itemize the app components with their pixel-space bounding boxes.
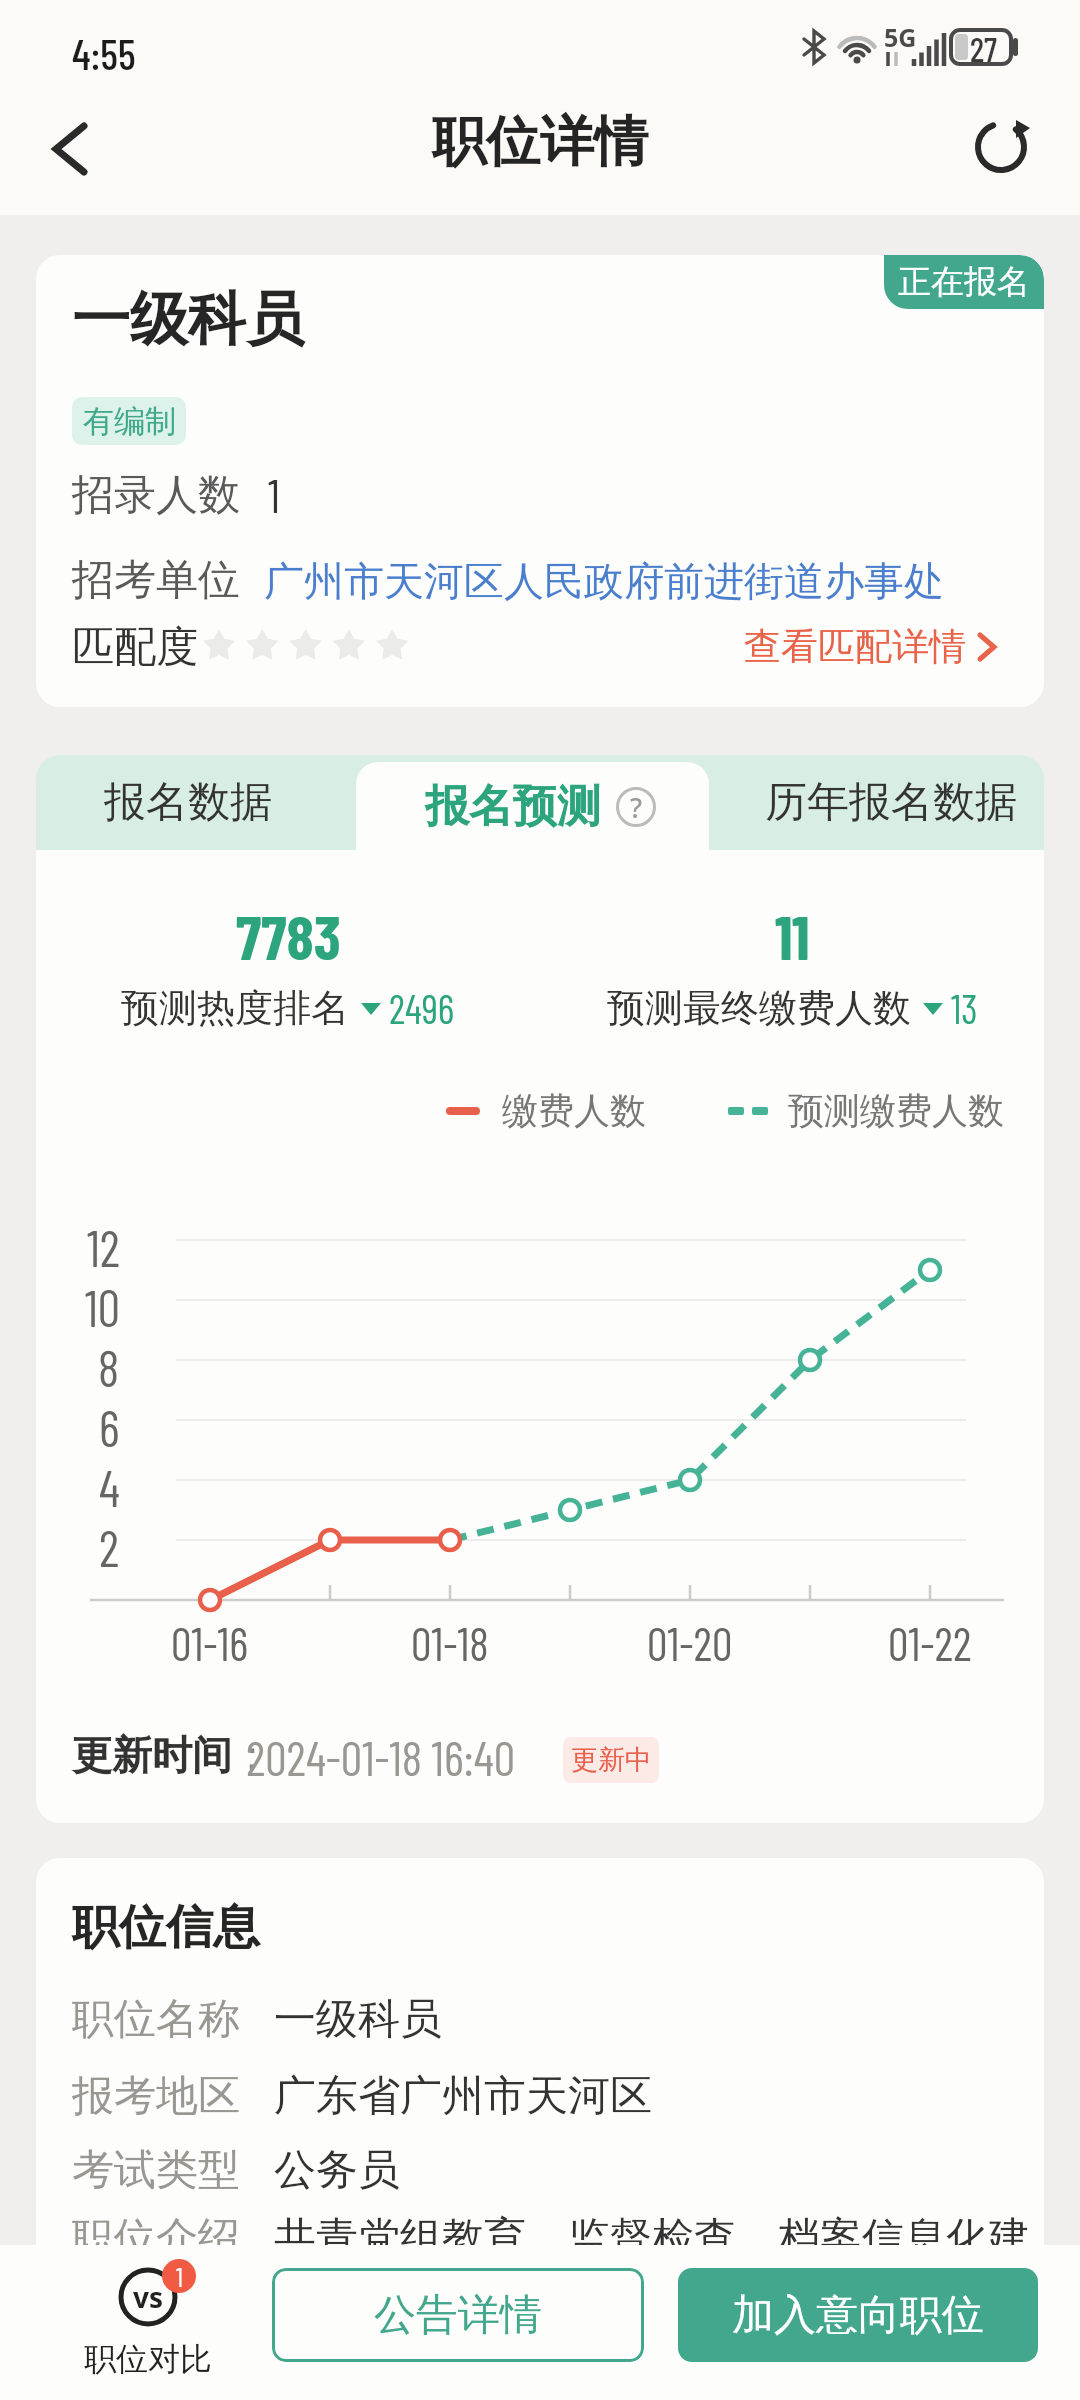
staticText: 1 xyxy=(268,467,280,522)
staticText: 招考单位 xyxy=(72,554,240,607)
staticText: 一级科员 xyxy=(274,1993,442,2046)
button[interactable]: vs xyxy=(66,2253,230,2397)
staticText: 匹配度 xyxy=(72,621,198,674)
staticText: 更新中 xyxy=(571,1743,652,1777)
staticText: 有编制 xyxy=(83,402,176,441)
staticText: 报考地区 xyxy=(72,2070,240,2123)
staticText: 报名预测 xyxy=(425,779,601,834)
staticText: 职位名称 xyxy=(72,1993,240,2046)
staticText: 查看匹配详情 xyxy=(744,623,966,670)
button[interactable]: 历年报名数据 xyxy=(709,755,1044,850)
staticText: 01-20 xyxy=(647,1615,733,1670)
staticText: 缴费人数 xyxy=(502,1088,646,1133)
staticText: 2024-01-18 16:40 xyxy=(246,1728,515,1786)
staticText: 2 xyxy=(99,1517,120,1573)
staticText: 27 xyxy=(970,28,998,69)
button[interactable]: 公告详情 xyxy=(272,2268,644,2362)
staticText: 8 xyxy=(98,1337,120,1393)
staticText: 4 xyxy=(99,1457,120,1513)
staticText: 更新时间 xyxy=(72,1730,232,1780)
staticText: 1 xyxy=(176,2260,183,2292)
staticText: 历年报名数据 xyxy=(765,776,1017,829)
staticText: 01-16 xyxy=(171,1615,249,1670)
staticText: 预测缴费人数 xyxy=(788,1088,1004,1133)
button[interactable] xyxy=(38,116,102,180)
staticText: 考试类型 xyxy=(72,2144,240,2197)
staticText: 12 xyxy=(87,1217,120,1273)
button[interactable] xyxy=(972,118,1032,178)
staticText: 2496 xyxy=(389,984,455,1032)
staticText: 7783 xyxy=(236,898,341,972)
staticText: 共青党组教育、监督检查、档案信息化建 xyxy=(274,2212,1030,2265)
staticText: 职位详情 xyxy=(432,108,648,176)
staticText: 01-22 xyxy=(888,1615,972,1670)
button[interactable]: 报名预测 xyxy=(356,762,709,850)
staticText: 11 xyxy=(775,898,810,972)
staticText: 职位信息 xyxy=(72,1898,260,1957)
staticText: 13 xyxy=(951,984,978,1032)
staticText: 5G xyxy=(884,20,917,54)
staticText: 广东省广州市天河区 xyxy=(274,2070,652,2123)
staticText: 职位对比 xyxy=(84,2339,212,2379)
staticText: 一级科员 xyxy=(72,283,304,356)
staticText: 预测最终缴费人数 xyxy=(607,984,911,1032)
button[interactable]: 查看匹配详情 xyxy=(744,623,1000,670)
staticText: 01-18 xyxy=(411,1615,489,1670)
staticText: 加入意向职位 xyxy=(732,2289,984,2342)
staticText: 正在报名 xyxy=(898,261,1030,303)
button[interactable]: 加入意向职位 xyxy=(678,2268,1038,2362)
staticText: 10 xyxy=(85,1277,120,1333)
button[interactable]: 报名数据 xyxy=(36,755,340,850)
staticText: vs xyxy=(133,2278,164,2316)
staticText: 职位介绍 xyxy=(72,2212,240,2265)
staticText: ： xyxy=(232,1730,272,1780)
staticText: ? xyxy=(630,789,643,826)
staticText: 公务员 xyxy=(274,2144,400,2197)
staticText: 预测热度排名 xyxy=(121,984,349,1032)
staticText: 6 xyxy=(99,1397,120,1453)
staticText: 公告详情 xyxy=(374,2289,542,2342)
staticText: 4:55 xyxy=(72,28,136,78)
staticText: 广州市天河区人民政府前进街道办事处 xyxy=(264,556,944,606)
staticText: 招录人数 xyxy=(72,469,240,522)
staticText: 报名数据 xyxy=(104,776,272,829)
